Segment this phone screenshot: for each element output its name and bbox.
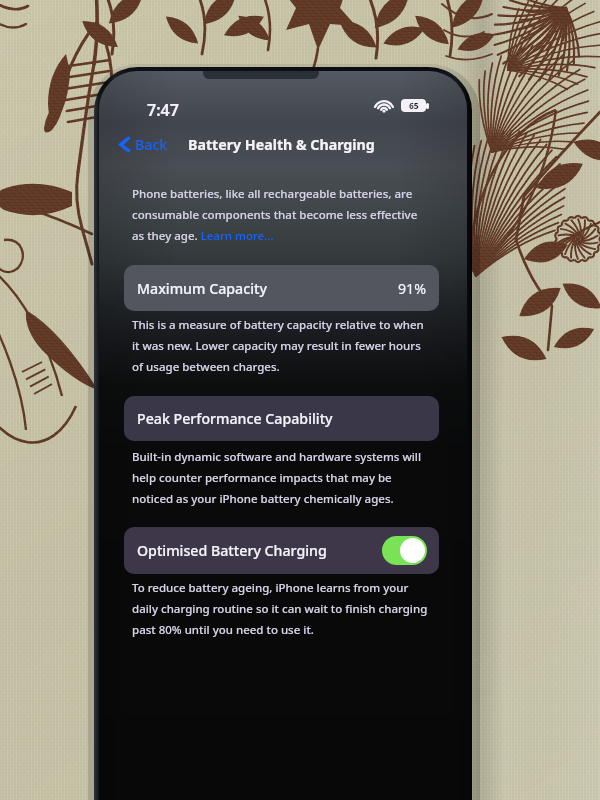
staticText: as they age. Learn more... [132,228,274,244]
staticText: consumable components that become less e… [132,207,418,223]
button[interactable]: Optimised Battery Charging, on [382,536,427,565]
staticText: Battery Health & Charging [188,135,375,154]
staticText: Phone batteries, like all rechargeable b… [132,186,413,202]
staticText: help counter performance impacts that ma… [132,470,392,486]
staticText: it was new. Lower capacity may result in… [132,338,421,354]
button[interactable]: Back [117,134,170,155]
button[interactable]: Optimised Battery Charging [124,527,439,574]
staticText: 65 [409,100,419,112]
staticText: 91% [398,279,427,298]
staticText: daily charging routine so it can wait to… [132,601,428,617]
staticText: This is a measure of battery capacity re… [132,317,424,333]
staticText: of usage between charges. [132,359,280,375]
staticText: To reduce battery ageing, iPhone learns … [132,580,409,596]
staticText: noticed as your iPhone battery chemicall… [132,491,394,507]
staticText: Optimised Battery Charging [137,541,327,560]
staticText: 7:47 [147,99,179,121]
staticText: past 80% until you need to use it. [132,622,314,638]
staticText: Back [135,135,168,154]
staticText: Built-in dynamic software and hardware s… [132,449,422,465]
button[interactable]: Peak Performance Capability [124,396,439,441]
staticText: Maximum Capacity [137,279,267,298]
button[interactable]: Maximum Capacity [124,265,439,311]
staticText: Peak Performance Capability [137,409,333,428]
